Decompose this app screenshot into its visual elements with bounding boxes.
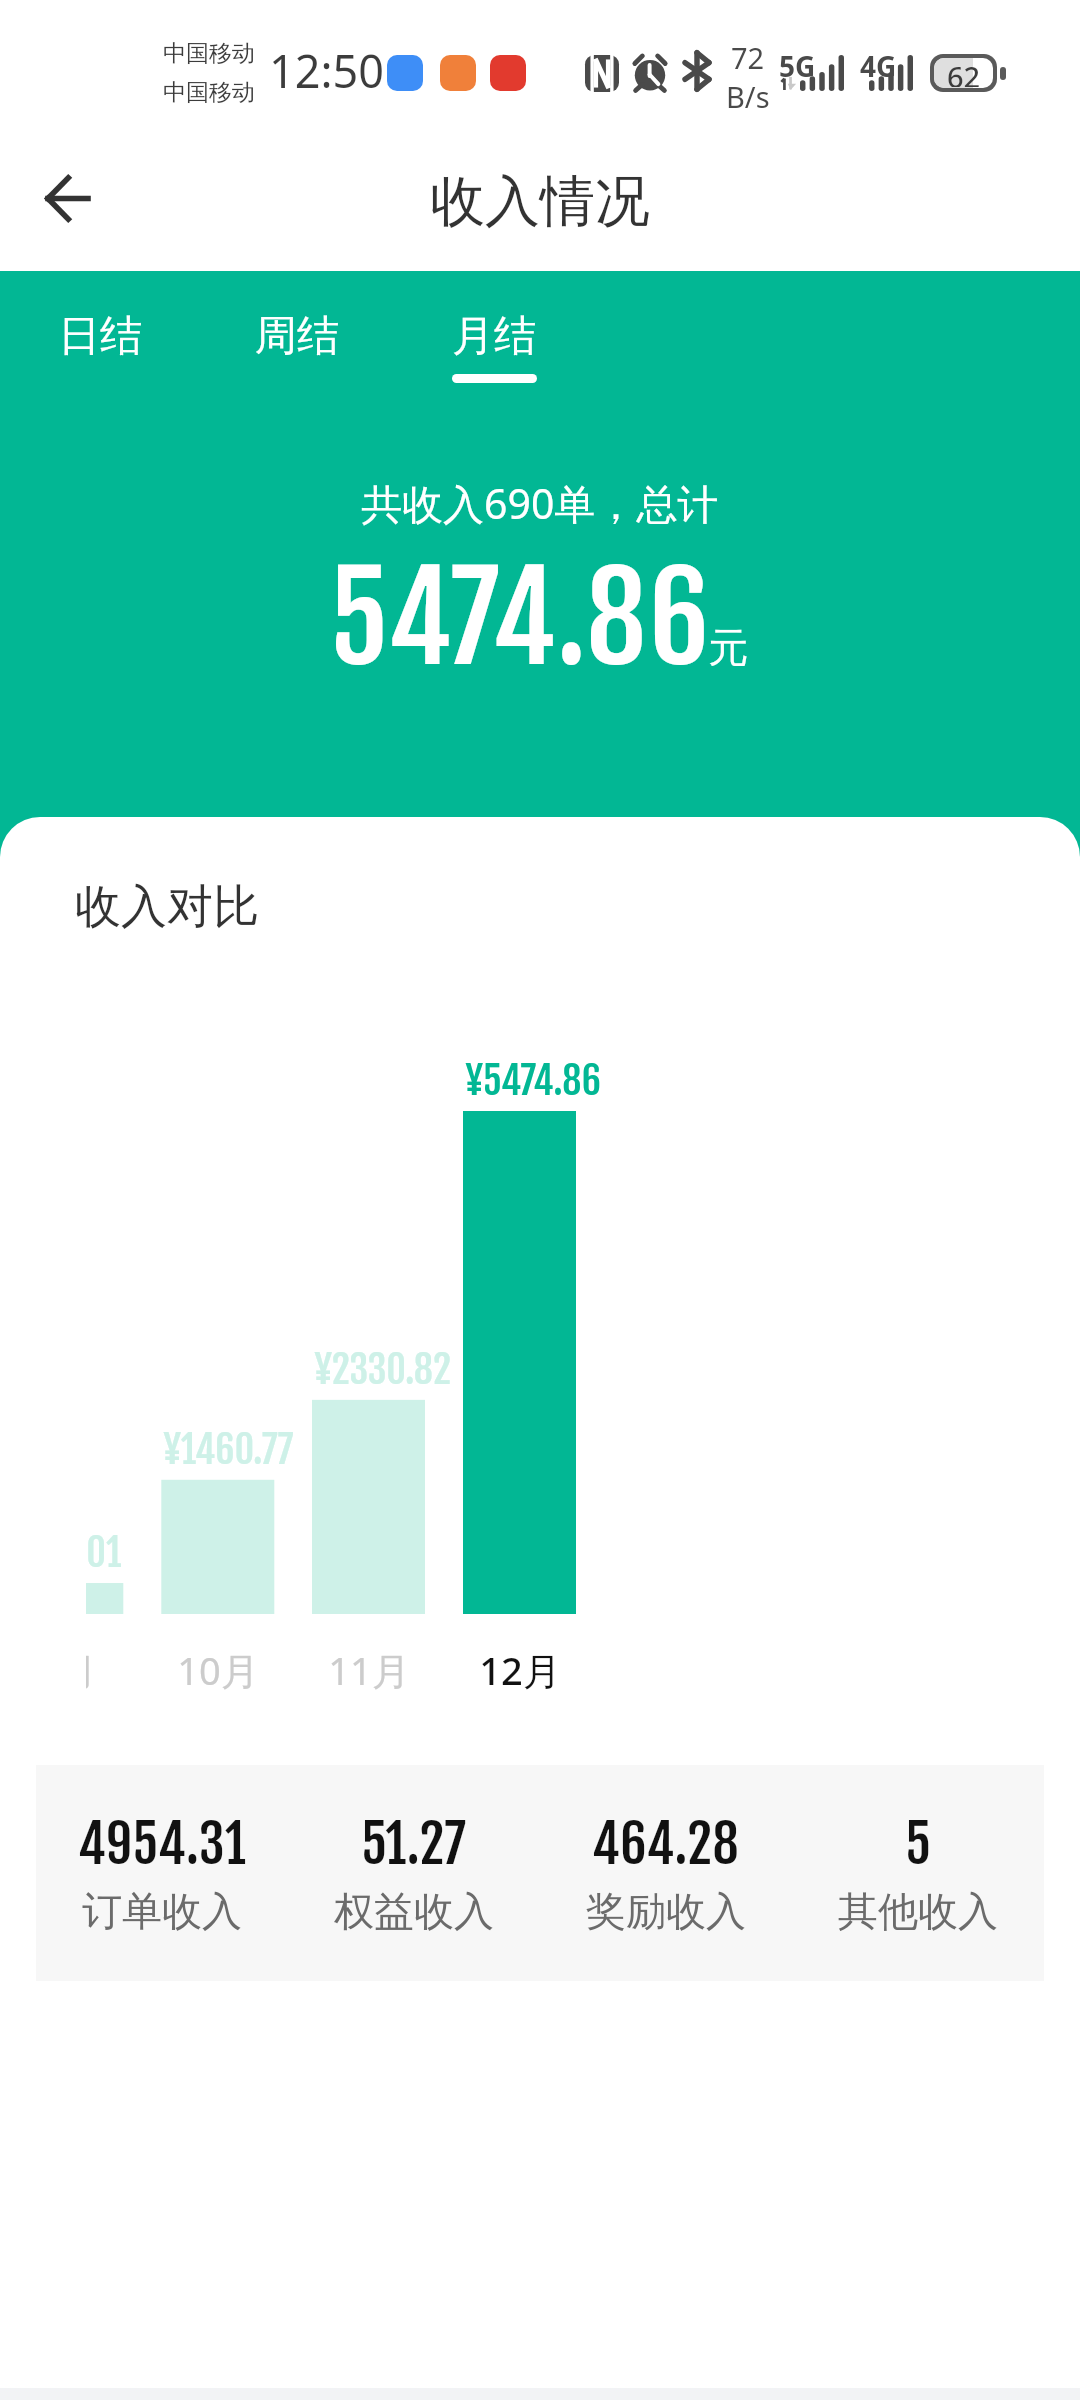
button[interactable]: 周结 [237,310,357,363]
staticText: 收入对比 [75,878,259,936]
staticText: 元 [708,622,748,672]
staticText: 9月 [86,1644,97,1696]
button[interactable]: 464.28 [540,1765,792,1981]
staticText: 订单收入 [82,1886,242,1936]
staticText: 收入情况 [430,167,650,236]
staticText: 其他收入 [838,1886,998,1936]
staticText: 奖励收入 [586,1886,746,1936]
staticText: 10月 [177,1644,259,1696]
staticText: 5 [905,1812,932,1877]
staticText: 5474.86 [329,544,712,694]
button[interactable]: 4954.31 [36,1765,288,1981]
staticText: 12月 [479,1644,561,1696]
staticText: ¥337.01 [86,1529,122,1577]
staticText: 11月 [328,1644,410,1696]
staticText: 权益收入 [334,1886,494,1936]
staticText: 72 [731,38,765,77]
staticText: 中国移动 [163,78,255,107]
staticText: 464.28 [592,1812,740,1877]
staticText: ¥2330.82 [314,1346,452,1394]
staticText: 5G [779,47,816,85]
staticText: 月结 [434,310,554,363]
button[interactable]: 5 [792,1765,1044,1981]
staticText: ¥1460.77 [163,1426,294,1474]
staticText: 日结 [40,310,160,363]
staticText: 共收入690单，总计 [361,475,719,531]
staticText: 4G [860,47,897,85]
staticText: 51.27 [361,1812,467,1877]
staticText: 62 [947,58,981,87]
staticText: B/s [726,77,770,116]
button[interactable]: 51.27 [288,1765,540,1981]
staticText: ¥5474.86 [465,1057,602,1105]
button[interactable]: Back [12,143,122,253]
staticText: 4954.31 [78,1812,247,1877]
staticText: 周结 [237,310,357,363]
staticText: 中国移动 [163,39,255,68]
staticText: 12:50 [269,40,385,101]
button[interactable]: 月结 [434,310,554,383]
button[interactable]: 日结 [40,310,160,363]
